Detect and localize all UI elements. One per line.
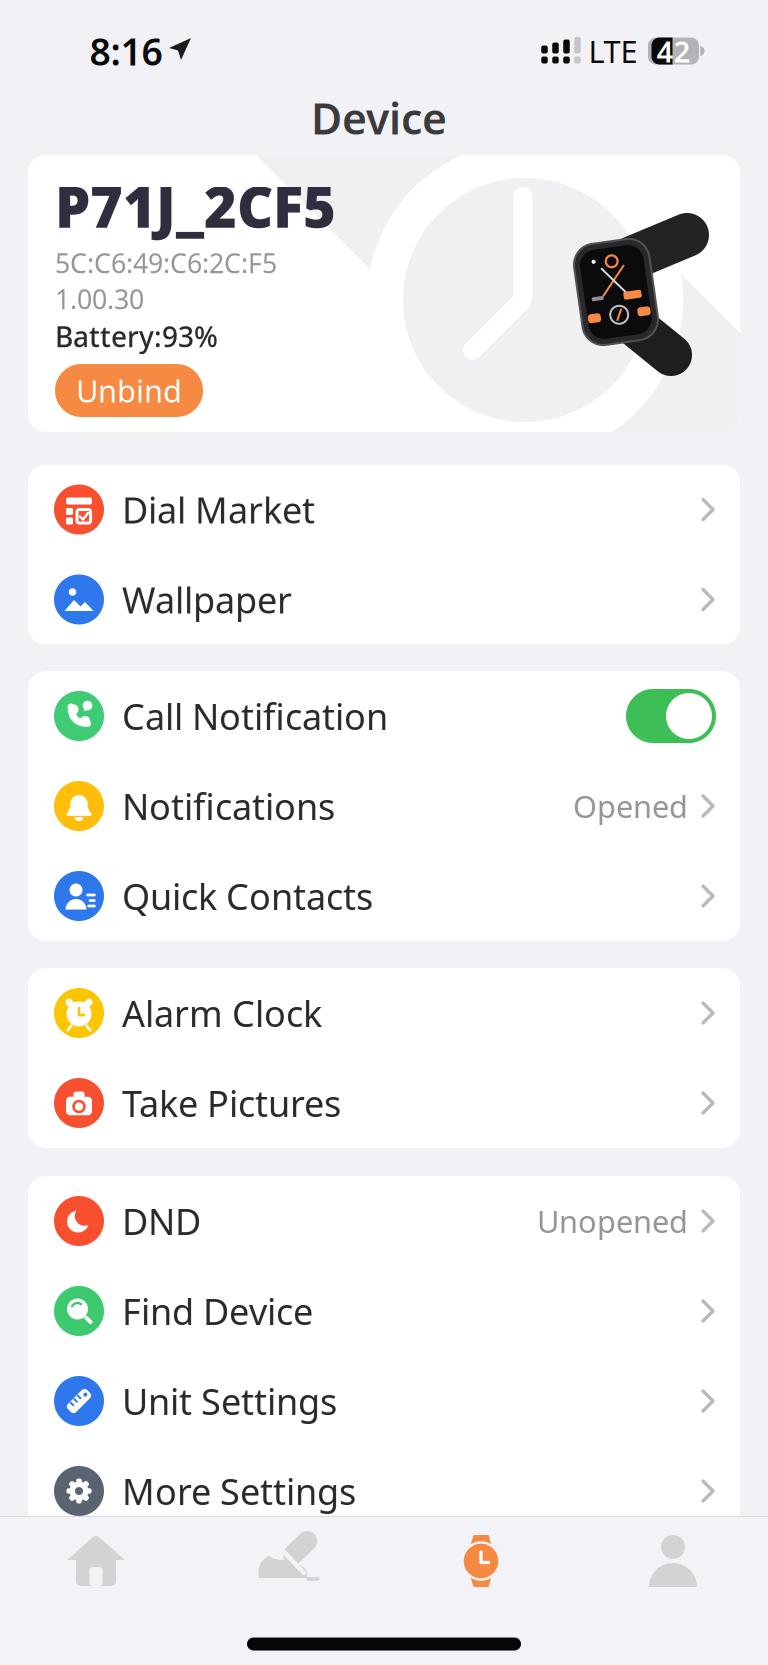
button[interactable]: Unbind <box>55 364 203 417</box>
button[interactable]: Quick Contacts <box>28 851 740 941</box>
staticText: Call Notification <box>122 692 388 740</box>
staticText: Take Pictures <box>122 1079 341 1127</box>
staticText: Battery:93% <box>55 318 218 355</box>
button[interactable]: Call Notification <box>28 671 740 761</box>
staticText: 8:16 <box>89 26 162 76</box>
staticText: Device <box>311 90 447 146</box>
staticText: Dial Market <box>122 486 315 533</box>
staticText: 1.00.30 <box>55 281 144 317</box>
staticText: 5C:C6:49:C6:2C:F5 <box>55 245 277 281</box>
staticText: LTE <box>588 31 637 71</box>
staticText: Opened <box>573 786 688 826</box>
staticText: Find Device <box>122 1287 313 1335</box>
button[interactable]: Dial Market <box>28 464 740 554</box>
staticText: Alarm Clock <box>122 989 322 1037</box>
button[interactable]: Exercise <box>256 1531 320 1591</box>
staticText: Unit Settings <box>122 1377 337 1425</box>
button[interactable]: Notifications <box>28 761 740 851</box>
button[interactable]: Home <box>66 1531 126 1591</box>
staticText: Quick Contacts <box>122 872 373 920</box>
button[interactable]: Device <box>463 1535 499 1587</box>
staticText: P71J_2CF5 <box>55 169 336 243</box>
staticText: Wallpaper <box>122 576 292 623</box>
button[interactable]: Unit Settings <box>28 1356 740 1446</box>
staticText: Unopened <box>537 1201 688 1241</box>
button[interactable]: DND <box>28 1176 740 1266</box>
button[interactable]: Profile <box>645 1532 701 1590</box>
staticText: DND <box>122 1197 201 1245</box>
button[interactable]: Take Pictures <box>28 1058 740 1148</box>
button[interactable]: Find Device <box>28 1266 740 1356</box>
staticText: Notifications <box>122 782 335 830</box>
staticText: Unbind <box>76 370 182 411</box>
staticText: More Settings <box>122 1467 356 1515</box>
staticText: 42 <box>656 31 690 70</box>
button[interactable]: More Settings <box>28 1446 740 1536</box>
button[interactable]: Alarm Clock <box>28 968 740 1058</box>
button[interactable]: Wallpaper <box>28 554 740 644</box>
